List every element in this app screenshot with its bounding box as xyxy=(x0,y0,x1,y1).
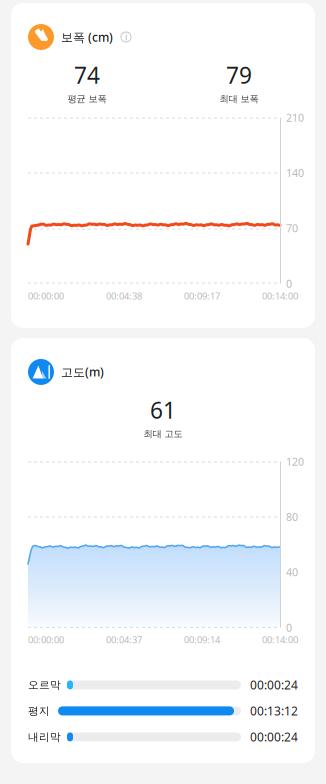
staticText: 0 xyxy=(286,276,292,291)
staticText: 00:04:38 xyxy=(106,290,142,302)
staticText: 보폭 (cm) xyxy=(61,29,113,45)
staticText: 최대 고도 xyxy=(143,428,182,440)
button[interactable]: 보폭 정보 xyxy=(120,31,132,43)
staticText: 120 xyxy=(286,454,304,469)
staticText: 74 xyxy=(74,60,100,90)
staticText: 00:00:00 xyxy=(28,290,64,302)
staticText: i xyxy=(125,31,127,43)
staticText: 고도(m) xyxy=(61,364,104,380)
staticText: 80 xyxy=(286,510,298,524)
staticText: 00:13:12 xyxy=(250,703,298,719)
staticText: 평균 보폭 xyxy=(67,93,106,105)
staticText: 00:00:24 xyxy=(250,677,298,693)
staticText: 오르막 xyxy=(28,678,61,691)
staticText: 최대 보폭 xyxy=(219,93,258,105)
staticText: 00:00:00 xyxy=(28,633,64,646)
staticText: 00:09:17 xyxy=(184,290,220,302)
staticText: 140 xyxy=(286,166,304,180)
staticText: 00:09:14 xyxy=(184,633,220,646)
staticText: 00:04:37 xyxy=(106,633,142,646)
staticText: 00:00:24 xyxy=(250,729,298,745)
staticText: 00:14:00 xyxy=(262,633,298,646)
staticText: 70 xyxy=(286,221,298,235)
staticText: 00:14:00 xyxy=(262,290,298,302)
staticText: 0 xyxy=(286,620,292,635)
staticText: 평지 xyxy=(28,704,50,717)
staticText: 61 xyxy=(150,395,176,425)
staticText: 79 xyxy=(226,60,252,90)
staticText: 40 xyxy=(286,565,298,579)
staticText: 210 xyxy=(286,110,304,125)
staticText: 내리막 xyxy=(28,730,61,743)
